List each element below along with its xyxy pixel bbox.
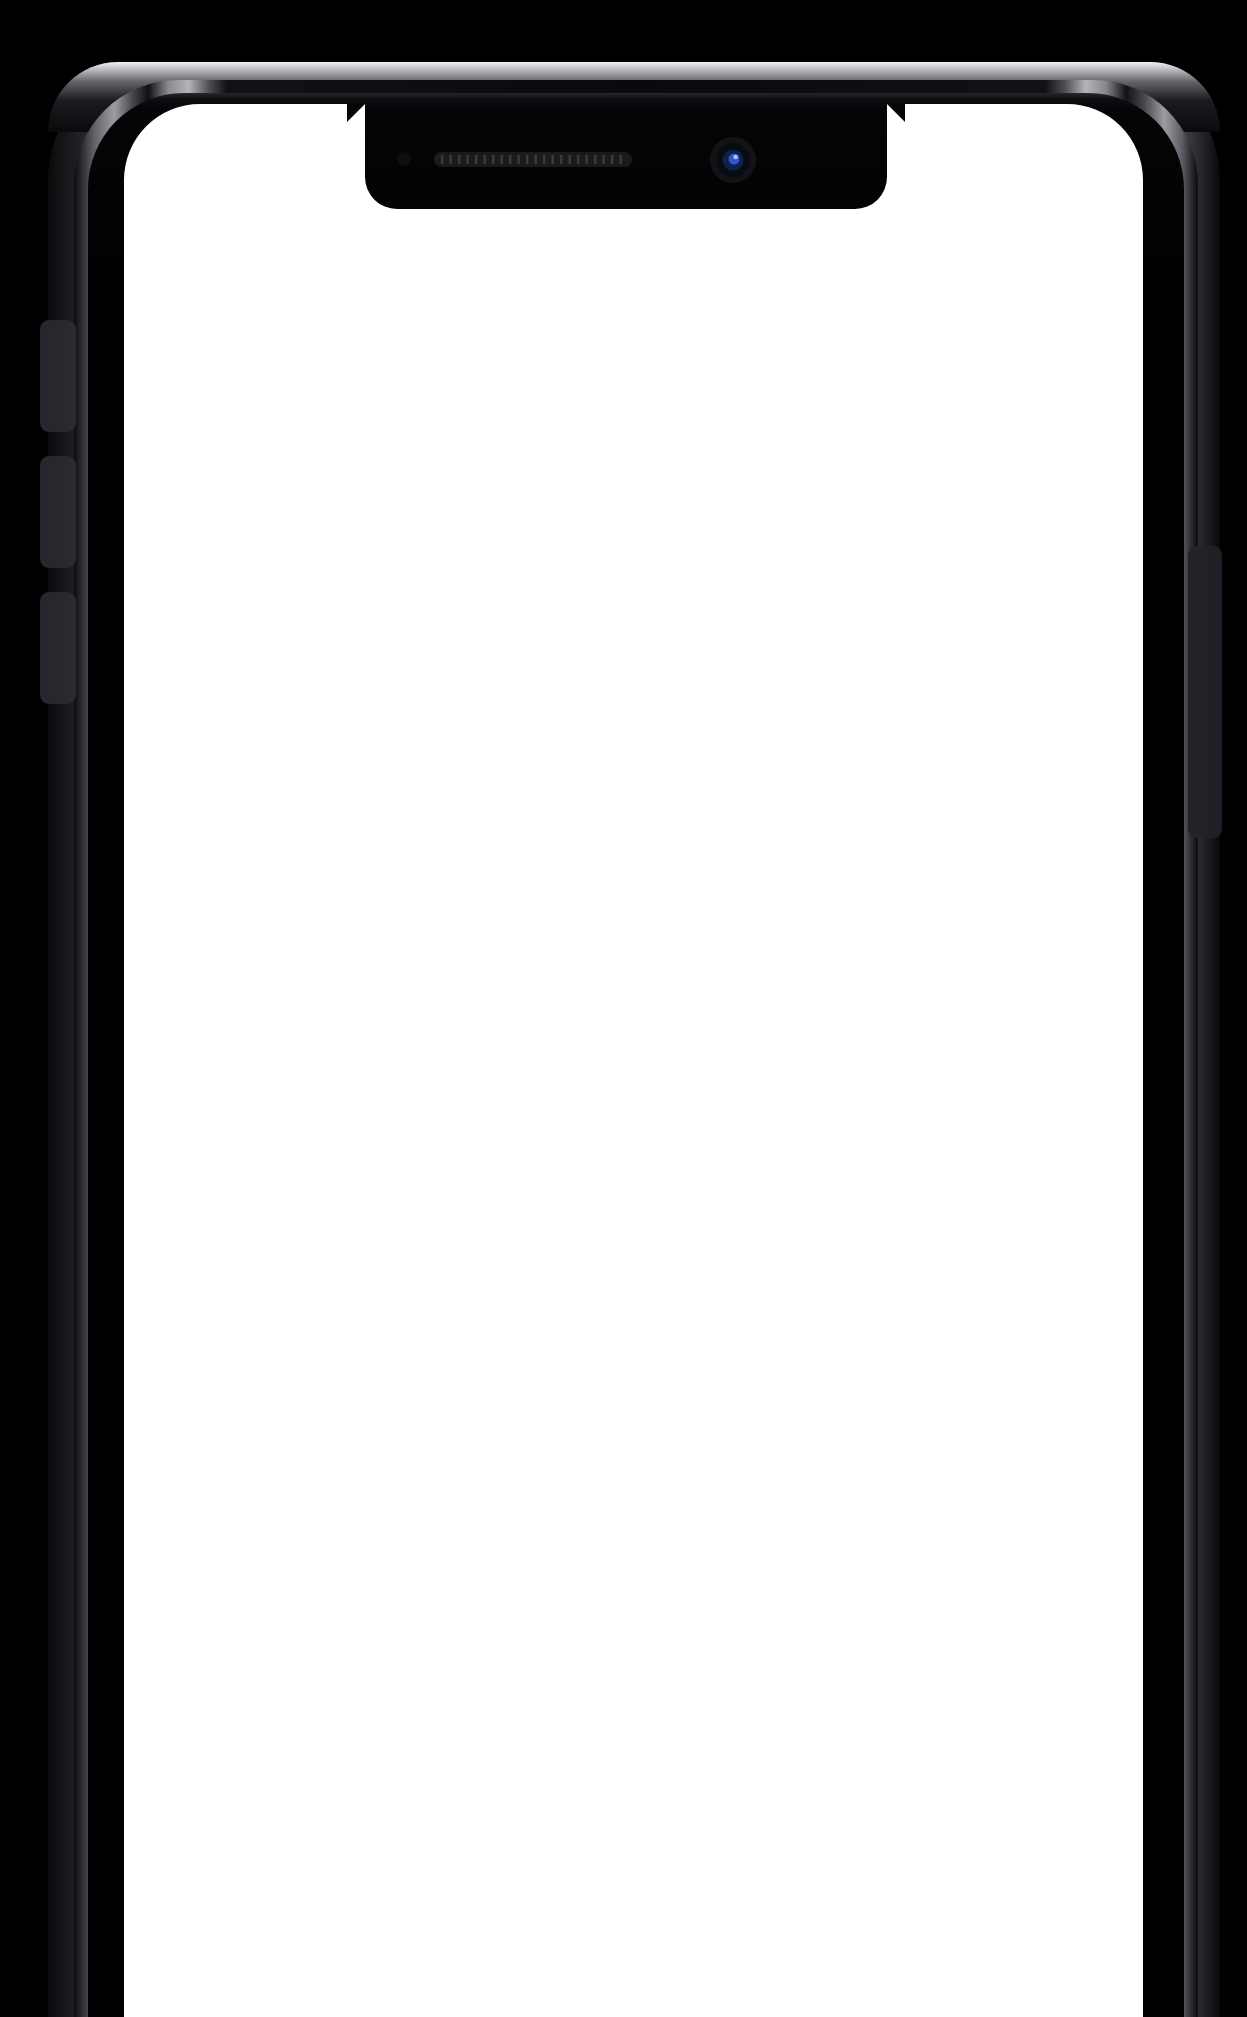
button[interactable]: Phone device screen: [0, 0, 1247, 2017]
